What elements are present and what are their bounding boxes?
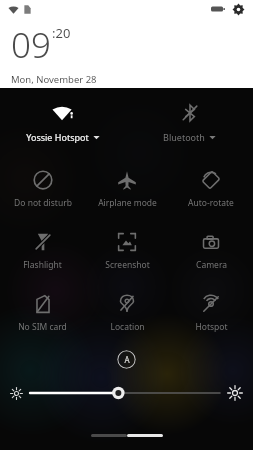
button[interactable]: Airplane mode [85,163,169,209]
staticText: Airplane mode [98,197,157,209]
button[interactable]: Bluetooth [126,100,253,143]
staticText: Do not disturb [14,197,72,209]
staticText: Flashlight [23,259,62,271]
staticText: Auto-rotate [188,197,234,209]
button[interactable]: No SIM card [0,287,85,333]
button[interactable]: Camera [169,225,253,271]
button[interactable] [30,381,220,405]
button[interactable]: Auto brightness [117,350,136,369]
staticText: A [124,354,130,365]
staticText: Bluetooth [163,131,205,143]
staticText: Yossie Hotspot [26,131,89,143]
staticText: Mon, November 28 [11,73,97,86]
staticText: Location [110,321,145,333]
staticText: 09 [11,21,51,69]
staticText: Camera [196,259,227,271]
staticText: Hotspot [195,321,228,333]
staticText: :20 [52,24,71,42]
button[interactable]: Screenshot [85,225,169,271]
button[interactable]: Do not disturb [0,163,85,209]
button[interactable]: Auto-rotate [169,163,253,209]
button[interactable]: Flashlight [0,225,85,271]
button[interactable]: Settings [231,2,245,16]
staticText: No SIM card [18,321,67,333]
button[interactable]: Hotspot [169,287,253,333]
staticText: Screenshot [105,259,150,271]
button[interactable]: Location [85,287,169,333]
button[interactable]: Yossie Hotspot [0,100,126,143]
